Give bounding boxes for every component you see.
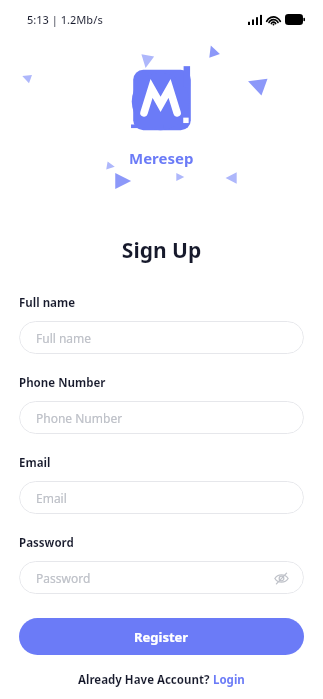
staticText: Password	[19, 535, 74, 551]
staticText: Login	[213, 672, 245, 688]
button[interactable]: Phone Number	[19, 401, 304, 434]
button[interactable]: Full name	[19, 321, 304, 354]
staticText: Sign Up	[0, 236, 323, 265]
staticText: Password	[36, 570, 91, 586]
staticText: Email	[36, 490, 67, 506]
staticText: Meresep	[129, 148, 194, 168]
staticText: Register	[134, 628, 189, 646]
staticText: Already Have Account?	[78, 672, 213, 688]
staticText: Email	[19, 455, 51, 471]
staticText: 5:13 | 1.2Mb/s	[27, 12, 103, 27]
button[interactable]: Email	[19, 481, 304, 514]
button[interactable]: Password	[19, 561, 304, 594]
staticText: Phone Number	[19, 375, 106, 391]
staticText: Full name	[19, 295, 76, 311]
staticText: Full name	[36, 330, 92, 346]
button[interactable]: Register	[19, 618, 304, 655]
button[interactable]: Show password	[271, 568, 291, 588]
button[interactable]: Login	[213, 672, 245, 688]
staticText: Phone Number	[36, 410, 123, 426]
